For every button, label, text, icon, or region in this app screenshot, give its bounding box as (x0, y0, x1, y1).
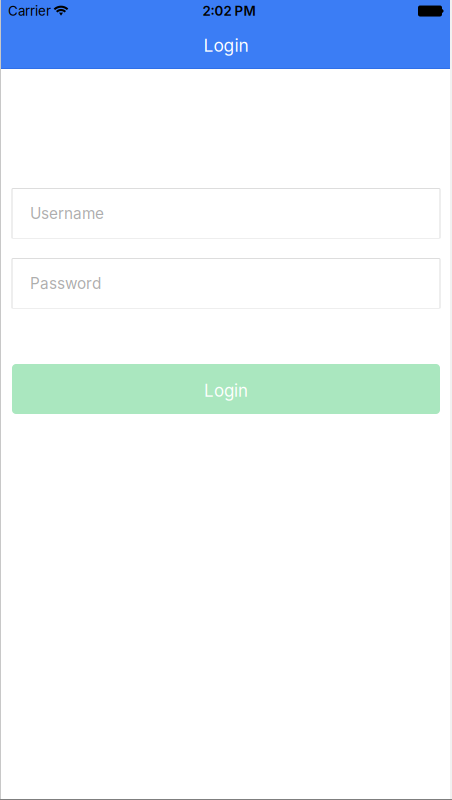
staticText: Login (204, 380, 248, 401)
button[interactable]: Password (12, 258, 440, 308)
staticText: Carrier (8, 3, 51, 19)
staticText: Password (30, 274, 101, 293)
button[interactable]: Login (12, 364, 440, 414)
button[interactable]: Username (12, 188, 440, 238)
staticText: Login (203, 35, 248, 56)
staticText: Username (30, 204, 104, 223)
staticText: 2:02 PM (202, 3, 255, 19)
